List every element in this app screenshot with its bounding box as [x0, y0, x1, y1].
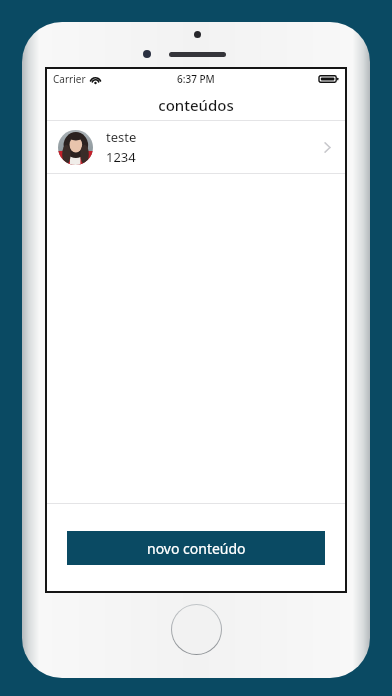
button[interactable]: novo conteúdo — [67, 531, 325, 565]
button[interactable]: teste — [47, 121, 345, 174]
other: Home — [172, 605, 221, 654]
staticText: conteúdos — [158, 95, 234, 115]
staticText: teste — [106, 128, 137, 146]
staticText: novo conteúdo — [147, 539, 246, 558]
staticText: Carrier — [53, 72, 86, 86]
other: Open — [318, 138, 336, 156]
staticText: 1234 — [106, 148, 136, 166]
staticText: 6:37 PM — [177, 72, 215, 86]
